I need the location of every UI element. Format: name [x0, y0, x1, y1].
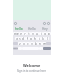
- staticText: d: [22, 37, 24, 40]
- button[interactable]: c: [26, 42, 30, 45]
- button[interactable]: p: [47, 32, 51, 35]
- staticText: Hey: [42, 27, 48, 31]
- staticText: o: [44, 32, 46, 35]
- staticText: i: [41, 32, 42, 35]
- staticText: p: [48, 32, 50, 35]
- button[interactable]: f: [25, 37, 29, 40]
- staticText: w: [16, 32, 19, 35]
- staticText: Welcome: [23, 63, 41, 68]
- button[interactable]: l: [45, 37, 49, 40]
- staticText: g: [30, 37, 32, 40]
- button[interactable]: hello: [13, 26, 25, 31]
- button[interactable]: w: [16, 32, 19, 35]
- staticText: y: [32, 32, 34, 35]
- button[interactable]: o: [43, 32, 47, 35]
- staticText: v: [31, 42, 33, 45]
- button[interactable]: s: [18, 37, 21, 40]
- button[interactable]: Hello: [25, 26, 38, 31]
- button[interactable]: h: [33, 37, 37, 40]
- staticText: t: [28, 32, 30, 35]
- staticText: j: [39, 37, 40, 40]
- button[interactable]: y: [31, 32, 35, 35]
- button[interactable]: i: [39, 32, 43, 35]
- button[interactable]: Settings: [47, 22, 50, 25]
- staticText: b: [35, 42, 37, 45]
- button[interactable]: t: [27, 32, 31, 35]
- staticText: k: [42, 37, 44, 40]
- staticText: h: [34, 37, 36, 40]
- button[interactable]: n: [38, 42, 42, 45]
- button[interactable]: d: [21, 37, 25, 40]
- button[interactable]: [43, 47, 51, 50]
- button[interactable]: q: [13, 32, 16, 35]
- staticText: x: [23, 42, 25, 45]
- button[interactable]: g: [29, 37, 33, 40]
- staticText: c: [27, 42, 29, 45]
- button[interactable]: x: [22, 42, 26, 45]
- staticText: hello: [15, 26, 23, 31]
- button[interactable]: ?123: [13, 47, 18, 50]
- staticText: ?123: [13, 47, 18, 50]
- staticText: a: [16, 37, 18, 40]
- button[interactable]: Google search: [14, 22, 17, 25]
- button[interactable]: k: [41, 37, 45, 40]
- button[interactable]: u: [35, 32, 39, 35]
- button[interactable]: e: [19, 32, 23, 35]
- staticText: q: [14, 32, 16, 35]
- button[interactable]: r: [23, 32, 27, 35]
- staticText: n: [39, 42, 41, 45]
- button[interactable]: v: [30, 42, 34, 45]
- staticText: s: [19, 37, 21, 40]
- staticText: z: [19, 42, 21, 45]
- button[interactable]: z: [18, 42, 22, 45]
- staticText: f: [27, 37, 28, 40]
- button[interactable]: j: [37, 37, 41, 40]
- staticText: r: [24, 32, 26, 35]
- staticText: e: [20, 32, 22, 35]
- staticText: Hello: [28, 27, 36, 31]
- staticText: u: [36, 32, 38, 35]
- staticText: Sign in to continue here: [17, 69, 47, 73]
- button[interactable]: b: [34, 42, 38, 45]
- button[interactable]: a: [15, 37, 18, 40]
- button[interactable]: Hey: [38, 26, 51, 31]
- staticText: m: [43, 42, 46, 45]
- button[interactable]: Stickers: [43, 22, 46, 25]
- button[interactable]: m: [42, 42, 46, 45]
- staticText: .: [41, 47, 42, 50]
